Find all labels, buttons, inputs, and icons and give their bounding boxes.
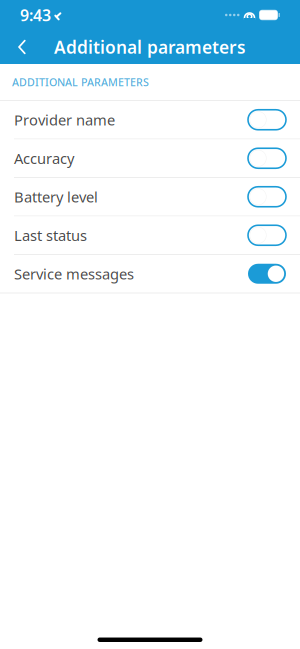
staticText: Service messages xyxy=(14,264,134,283)
staticText: Last status xyxy=(14,225,87,245)
button[interactable]: Accuracy xyxy=(0,139,300,177)
staticText: Additional parameters xyxy=(54,35,246,58)
staticText: ADDITIONAL PARAMETERS xyxy=(12,75,149,89)
staticText: Battery level xyxy=(14,187,98,206)
staticText: 9:43 xyxy=(20,4,51,26)
button[interactable]: Service messages xyxy=(0,255,300,292)
staticText: Accuracy xyxy=(14,148,74,168)
button[interactable]: Back xyxy=(0,30,44,64)
button[interactable]: Battery level xyxy=(0,178,300,215)
button[interactable]: Provider name xyxy=(0,101,300,138)
staticText: Provider name xyxy=(14,110,115,129)
button[interactable]: Last status xyxy=(0,216,300,254)
